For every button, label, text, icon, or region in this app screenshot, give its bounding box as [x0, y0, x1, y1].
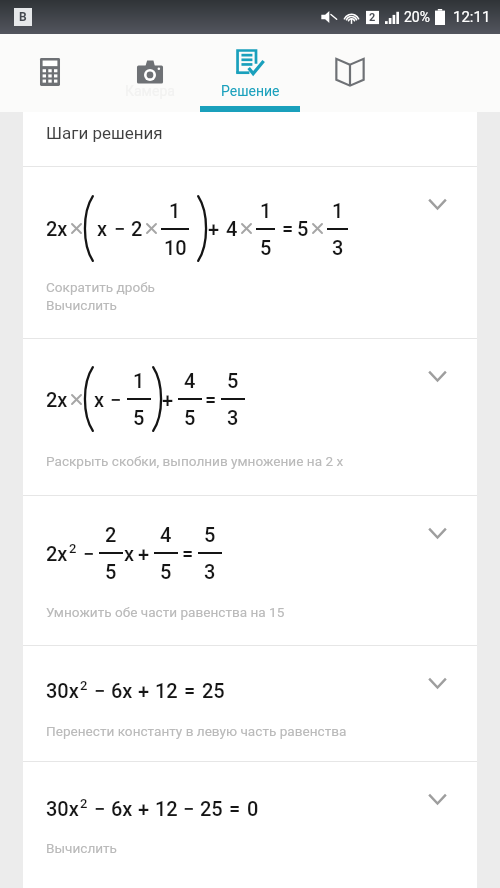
staticText: =	[282, 217, 294, 240]
staticText: Перенести константу в левую часть равенс…	[46, 723, 347, 739]
staticText: 3	[227, 406, 239, 429]
staticText: =	[229, 797, 241, 820]
staticText: Шаги решения	[46, 123, 163, 143]
staticText: +	[162, 388, 174, 411]
staticText: 5	[227, 369, 239, 392]
staticText: Вычислить	[46, 297, 118, 313]
staticText: 6x	[111, 797, 133, 820]
staticText: Умножить обе части равенства на 15	[46, 604, 285, 620]
staticText: 3	[204, 560, 216, 583]
staticText: +	[138, 542, 150, 565]
staticText: −	[183, 797, 195, 820]
staticText: 0	[247, 797, 259, 820]
staticText: 25	[202, 679, 225, 702]
staticText: 2	[105, 523, 117, 546]
staticText: x	[97, 217, 108, 240]
staticText: B	[19, 10, 27, 24]
staticText: 1	[133, 369, 145, 392]
staticText: Вычислить	[46, 840, 118, 856]
staticText: +	[138, 679, 150, 702]
button[interactable]: Tab 1	[0, 34, 100, 112]
staticText: =	[184, 679, 196, 702]
button[interactable]: Решение	[200, 34, 300, 112]
staticText: 30x	[46, 797, 79, 820]
button[interactable]: 2x	[23, 496, 477, 645]
staticText: 5	[133, 406, 145, 429]
staticText: 2	[80, 678, 88, 693]
staticText: 12	[155, 679, 178, 702]
staticText: +	[138, 797, 150, 820]
staticText: Камера	[125, 83, 175, 99]
other: Развернуть	[428, 198, 447, 210]
staticText: −	[94, 797, 106, 820]
staticText: −	[83, 542, 95, 565]
staticText: −	[94, 679, 106, 702]
staticText: 4	[160, 523, 172, 546]
button[interactable]: 30x	[23, 646, 477, 761]
button[interactable]: Tab 4	[300, 34, 400, 112]
button[interactable]: 30x	[23, 762, 477, 888]
staticText: 4	[184, 369, 196, 392]
staticText: 5	[160, 560, 172, 583]
staticText: 2x	[46, 217, 68, 240]
staticText: 3	[332, 236, 344, 259]
other: Развернуть	[428, 677, 447, 689]
staticText: 2x	[46, 542, 68, 565]
staticText: 2	[69, 541, 77, 556]
staticText: 4	[226, 217, 238, 240]
staticText: 25	[200, 797, 223, 820]
staticText: 2x	[46, 388, 68, 411]
staticText: 30x	[46, 679, 79, 702]
staticText: 2	[369, 11, 376, 24]
button[interactable]: 2x	[23, 339, 477, 495]
staticText: 5	[260, 236, 272, 259]
staticText: 1	[332, 199, 344, 222]
other: Развернуть	[428, 527, 447, 539]
staticText: 5	[297, 217, 309, 240]
staticText: 2	[131, 217, 143, 240]
staticText: 6x	[111, 679, 133, 702]
staticText: x	[94, 388, 105, 411]
staticText: 5	[184, 406, 196, 429]
staticText: 12	[155, 797, 178, 820]
staticText: 12:11	[453, 8, 491, 26]
staticText: 5	[105, 560, 117, 583]
staticText: +	[208, 217, 220, 240]
other: Развернуть	[428, 793, 447, 805]
staticText: Сократить дробь	[46, 279, 155, 295]
staticText: 10	[164, 236, 187, 259]
staticText: =	[205, 388, 217, 411]
staticText: 1	[169, 199, 181, 222]
staticText: −	[110, 388, 122, 411]
staticText: 5	[204, 523, 216, 546]
staticText: 2	[80, 796, 88, 811]
staticText: 20%	[404, 9, 430, 25]
staticText: =	[182, 542, 194, 565]
staticText: −	[114, 217, 126, 240]
button[interactable]: 2x	[23, 167, 477, 338]
other: Развернуть	[428, 370, 447, 382]
staticText: 1	[260, 199, 272, 222]
staticText: Решение	[221, 83, 280, 99]
button[interactable]: Камера	[100, 34, 200, 112]
staticText: Раскрыть скобки, выполнив умножение на 2…	[46, 453, 344, 469]
staticText: x	[124, 542, 135, 565]
